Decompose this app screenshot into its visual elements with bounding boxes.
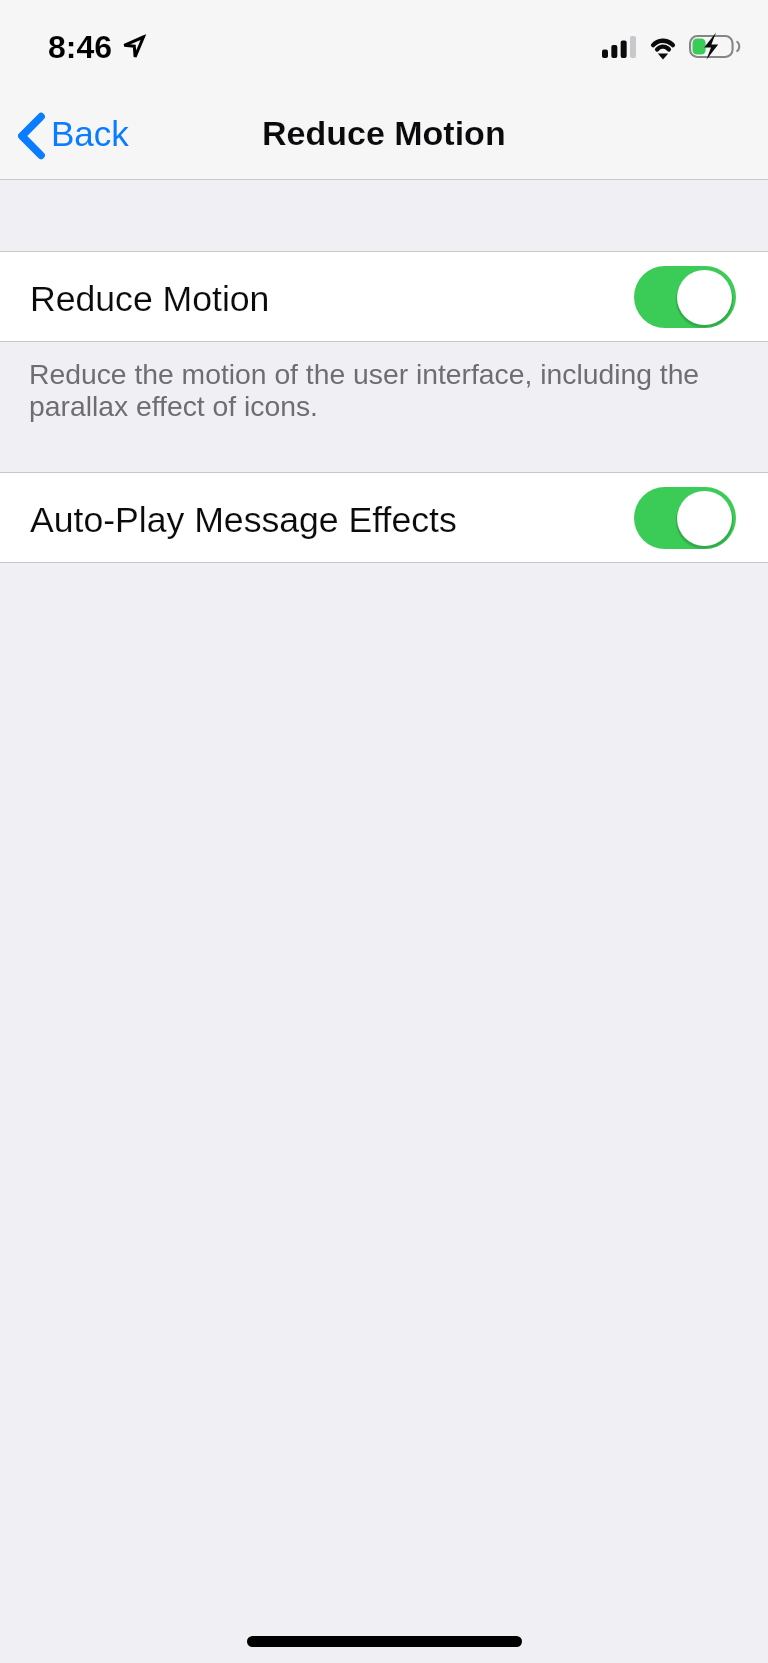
staticText: Reduce the motion of the user interface,… <box>29 358 754 422</box>
staticText: Reduce Motion <box>262 114 506 152</box>
button[interactable]: Reduce Motion, on <box>634 266 736 328</box>
button[interactable]: Auto-Play Message Effects <box>0 473 768 562</box>
button[interactable]: Back <box>0 102 145 166</box>
staticText: Reduce Motion <box>30 279 270 319</box>
staticText: Auto-Play Message Effects <box>30 500 457 540</box>
button[interactable]: Auto-Play Message Effects, on <box>634 487 736 549</box>
staticText: Back <box>51 114 129 153</box>
button[interactable]: Reduce Motion <box>0 252 768 341</box>
staticText: 8:46 <box>48 29 113 65</box>
